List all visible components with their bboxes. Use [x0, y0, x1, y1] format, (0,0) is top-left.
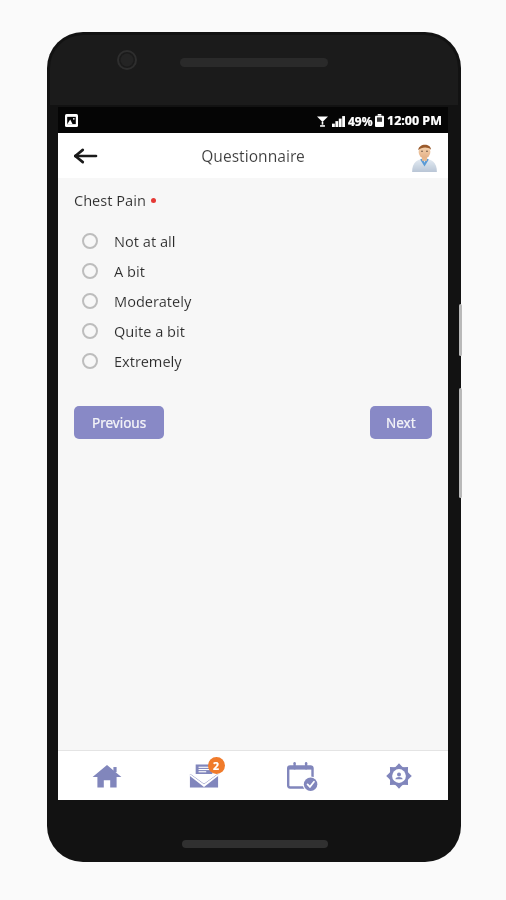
button[interactable]: Messages, 2 unread	[155, 751, 252, 800]
staticText: Questionnaire	[201, 145, 305, 166]
staticText: Not at all	[114, 231, 176, 251]
button[interactable]: Previous	[74, 406, 164, 439]
staticText: Moderately	[114, 291, 192, 311]
button[interactable]: Moderately	[58, 286, 448, 316]
staticText: A bit	[114, 261, 145, 281]
staticText: 49%	[348, 113, 373, 129]
button[interactable]: Quite a bit	[58, 316, 448, 346]
staticText: Chest Pain	[74, 190, 146, 210]
staticText: Quite a bit	[114, 321, 186, 341]
staticText: 12:00 PM	[387, 112, 442, 129]
staticText: Previous	[92, 414, 147, 432]
staticText: Next	[386, 414, 416, 432]
button[interactable]: Profile	[406, 138, 442, 174]
staticText: 2	[213, 759, 220, 773]
button[interactable]: Settings	[350, 751, 448, 800]
button[interactable]: A bit	[58, 256, 448, 286]
button[interactable]: Not at all	[58, 226, 448, 256]
button[interactable]: Extremely	[58, 346, 448, 376]
button[interactable]: Appointments	[252, 751, 350, 800]
button[interactable]: Home	[58, 751, 155, 800]
button[interactable]: Back	[66, 137, 104, 175]
button[interactable]: Next	[370, 406, 432, 439]
staticText: Extremely	[114, 351, 182, 371]
